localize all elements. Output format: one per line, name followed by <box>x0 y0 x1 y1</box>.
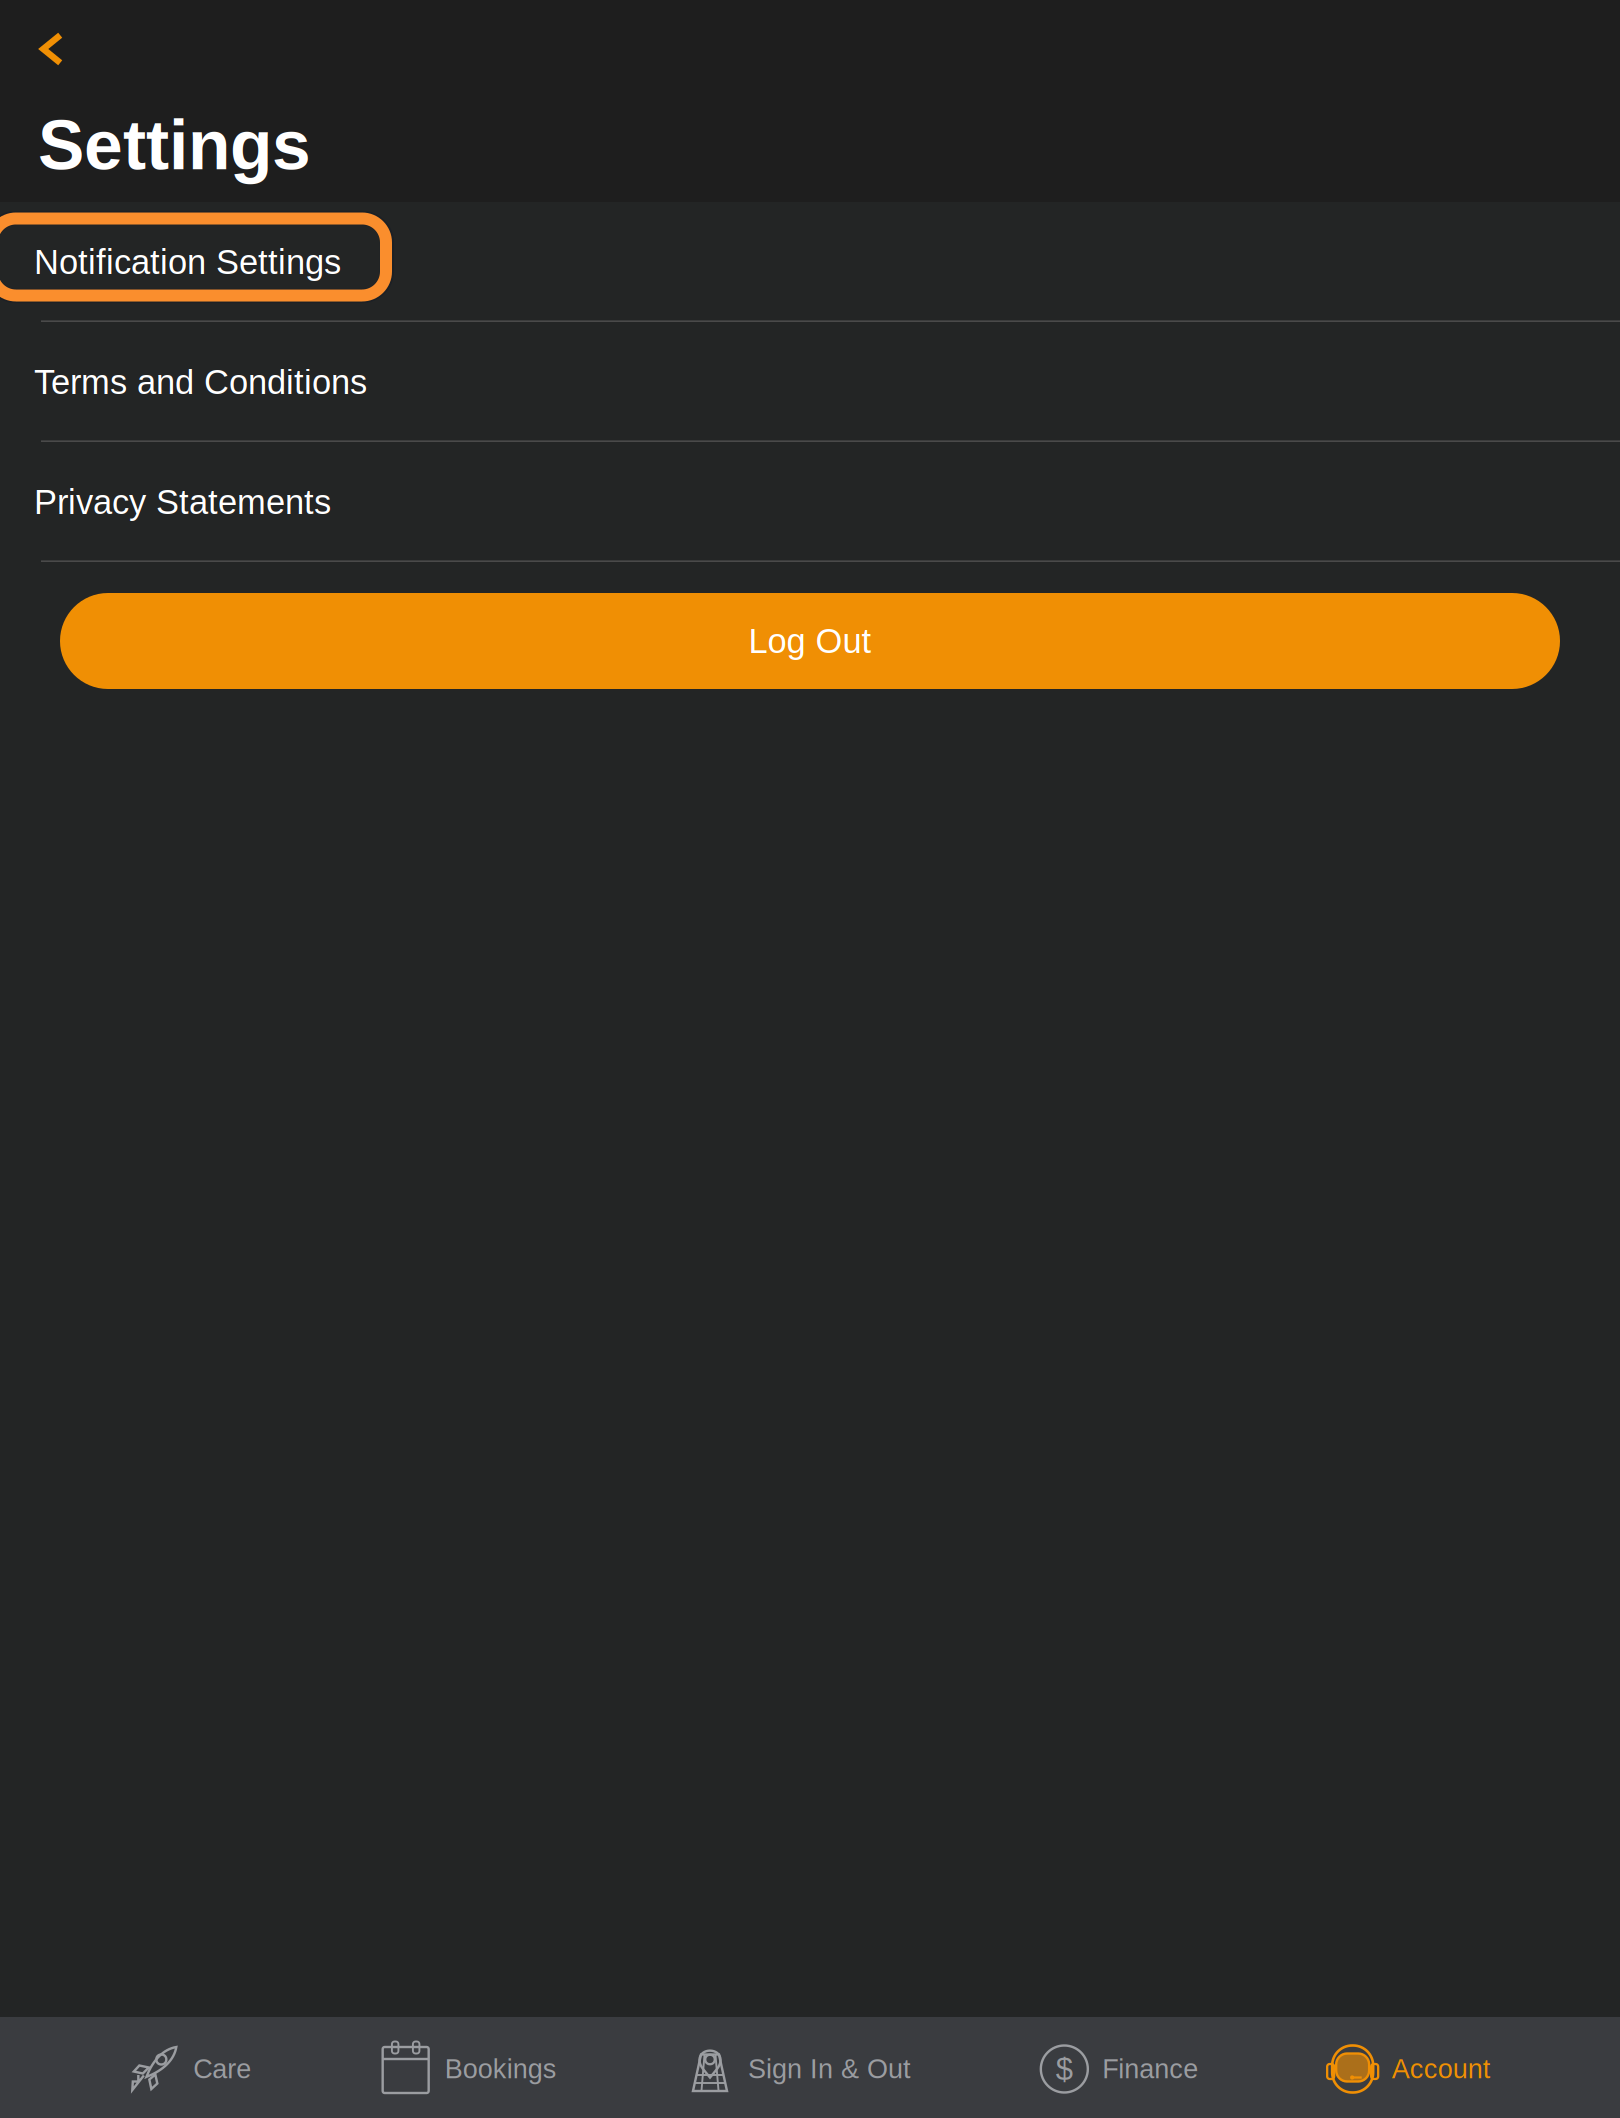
staticText: Care <box>193 2054 251 2084</box>
staticText: Sign In & Out <box>748 2054 911 2084</box>
button[interactable]: Care <box>129 2017 251 2118</box>
button[interactable]: Back <box>0 20 87 78</box>
staticText: Log Out <box>748 622 871 660</box>
button[interactable]: $ <box>1040 2017 1198 2118</box>
staticText: Notification Settings <box>34 243 341 281</box>
staticText: Privacy Statements <box>34 483 331 521</box>
button[interactable]: Privacy Statements <box>0 442 1620 562</box>
button[interactable]: Notification Settings <box>0 202 1620 322</box>
button[interactable]: Log Out <box>0 562 1620 689</box>
button[interactable]: Bookings <box>381 2017 557 2118</box>
button[interactable]: Sign In & Out <box>686 2017 911 2118</box>
staticText: Bookings <box>445 2054 557 2084</box>
staticText: Terms and Conditions <box>34 363 367 401</box>
staticText: Account <box>1392 2054 1491 2084</box>
staticText: Settings <box>38 106 311 184</box>
staticText: $ <box>1056 2052 1073 2086</box>
button[interactable]: Terms and Conditions <box>0 322 1620 442</box>
staticText: Finance <box>1102 2054 1198 2084</box>
button[interactable]: Account <box>1328 2017 1491 2118</box>
